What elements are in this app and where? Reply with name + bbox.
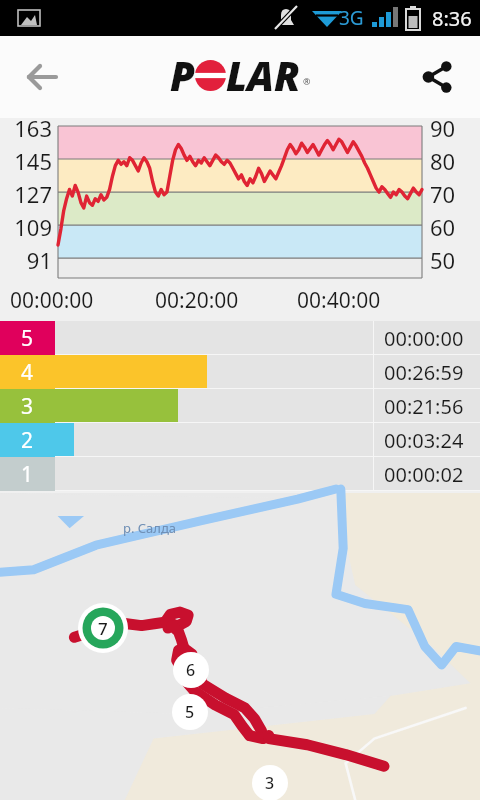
staticText: 8:36	[432, 5, 472, 32]
staticText: 00:20:00	[155, 286, 239, 315]
staticText: р. Салда	[123, 519, 177, 537]
staticText: 00:00:00	[384, 325, 464, 352]
staticText: 1	[21, 460, 34, 489]
staticText: 127	[0, 179, 52, 209]
staticText: 3	[265, 772, 275, 794]
staticText: 3G	[339, 5, 364, 31]
staticText: 00:40:00	[297, 286, 381, 315]
staticText: 00:26:59	[384, 359, 464, 386]
staticText: 145	[0, 146, 52, 176]
button[interactable]: Back	[14, 49, 70, 105]
staticText: ®	[303, 75, 311, 87]
staticText: 00:00:00	[10, 286, 94, 315]
button[interactable]: Lap marker 7	[78, 603, 128, 653]
staticText: 70	[430, 179, 476, 209]
staticText: 163	[0, 113, 52, 143]
button[interactable]: Lap marker 5	[172, 694, 208, 730]
staticText: 5	[185, 701, 195, 723]
staticText: 00:21:56	[384, 393, 464, 420]
button[interactable]: 3	[0, 389, 480, 423]
button[interactable]: 5	[0, 321, 480, 355]
staticText: 00:03:24	[384, 427, 464, 454]
button[interactable]: 1	[0, 457, 480, 491]
staticText: 6	[186, 659, 196, 681]
button[interactable]: Lap marker 7	[0, 493, 480, 800]
staticText: 60	[430, 212, 476, 242]
button[interactable]: 2	[0, 423, 480, 457]
staticText: LAR	[226, 48, 301, 102]
staticText: 91	[0, 245, 52, 275]
staticText: 3	[21, 392, 34, 421]
button[interactable]: Lap marker 3	[252, 765, 288, 800]
staticText: 5	[21, 324, 34, 353]
staticText: 109	[0, 212, 52, 242]
staticText: 4	[21, 358, 34, 387]
staticText: P	[170, 48, 195, 102]
staticText: 80	[430, 146, 476, 176]
staticText: 00:00:02	[384, 461, 464, 488]
button[interactable]: Lap marker 6	[173, 652, 209, 688]
staticText: 2	[21, 426, 34, 455]
staticText: 50	[430, 245, 476, 275]
staticText: 7	[98, 617, 108, 640]
button[interactable]: Share	[410, 49, 466, 105]
staticText: 90	[430, 113, 476, 143]
button[interactable]: 4	[0, 355, 480, 389]
